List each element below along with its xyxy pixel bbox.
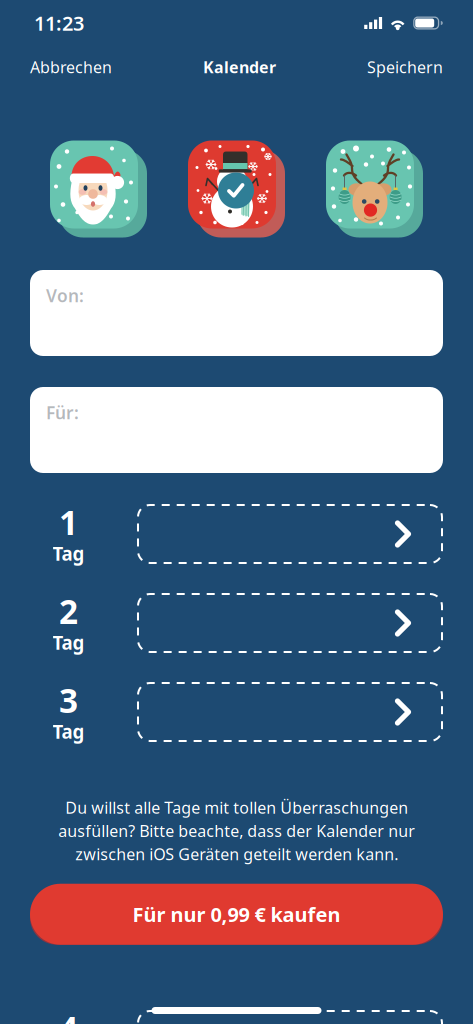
button[interactable]: Speichern xyxy=(367,56,443,78)
button[interactable]: Tag 2 bearbeiten xyxy=(137,593,443,653)
button[interactable]: Für: xyxy=(30,387,443,473)
staticText: Abbrechen xyxy=(30,56,112,78)
staticText: Von: xyxy=(46,284,84,307)
button[interactable]: Santa Motiv xyxy=(50,140,147,237)
staticText: Tag xyxy=(52,630,84,655)
staticText: 1 xyxy=(59,500,78,544)
staticText: 3 xyxy=(59,678,78,722)
staticText: 4 xyxy=(59,1006,78,1024)
button[interactable]: Tag 4 bearbeiten xyxy=(137,1010,443,1024)
staticText: 2 xyxy=(59,589,78,633)
staticText: Kalender xyxy=(203,56,276,78)
staticText: Speichern xyxy=(367,56,443,78)
button[interactable]: Von: xyxy=(30,270,443,356)
staticText: Du willst alle Tage mit tollen Überrasch… xyxy=(58,797,415,865)
staticText: 11:23 xyxy=(34,10,84,36)
button[interactable]: Abbrechen xyxy=(30,56,112,78)
button[interactable]: Für nur 0,99 € kaufen xyxy=(30,884,443,945)
staticText: Für nur 0,99 € kaufen xyxy=(132,901,340,928)
staticText: Für: xyxy=(46,401,79,424)
button[interactable]: Schneemann Motiv xyxy=(188,140,285,237)
button[interactable]: Rentier Motiv xyxy=(326,140,423,237)
button[interactable]: Tag 3 bearbeiten xyxy=(137,682,443,742)
staticText: Tag xyxy=(52,541,84,566)
staticText: Tag xyxy=(52,719,84,744)
button[interactable]: Tag 1 bearbeiten xyxy=(137,504,443,564)
